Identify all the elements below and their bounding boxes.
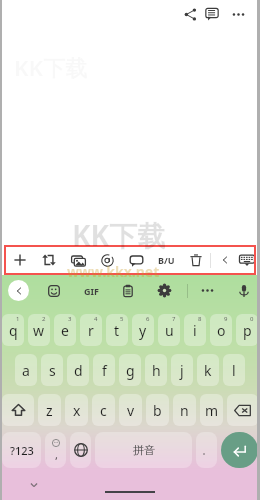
button[interactable]: t <box>106 314 128 346</box>
button[interactable]: j <box>171 354 193 386</box>
staticText: c <box>100 401 107 420</box>
button[interactable]: Insert image <box>67 249 89 271</box>
staticText: x <box>73 401 81 420</box>
button[interactable]: k <box>197 354 219 386</box>
staticText: 0 <box>250 315 254 323</box>
staticText: v <box>127 401 135 420</box>
button[interactable]: 。 <box>196 432 217 468</box>
staticText: www.kkx.net <box>67 262 160 281</box>
staticText: p <box>243 321 252 340</box>
button[interactable]: Settings <box>146 275 182 306</box>
staticText: KK下载 <box>72 216 166 254</box>
staticText: w <box>33 321 45 340</box>
button[interactable]: i <box>184 314 206 346</box>
button[interactable]: a <box>15 354 37 386</box>
button[interactable]: Comment <box>201 3 223 25</box>
button[interactable]: c <box>92 394 115 426</box>
button[interactable]: Previous <box>214 249 236 271</box>
staticText: e <box>61 321 69 340</box>
button[interactable]: z <box>38 394 61 426</box>
staticText: i <box>193 321 197 340</box>
staticText: o <box>217 321 226 340</box>
button[interactable]: n <box>173 394 196 426</box>
button[interactable]: x <box>65 394 88 426</box>
button[interactable]: u <box>158 314 180 346</box>
button[interactable]: Shift <box>2 394 34 426</box>
button[interactable]: More options <box>227 3 249 25</box>
button[interactable]: o <box>210 314 232 346</box>
staticText: , <box>55 447 58 462</box>
staticText: 6 <box>146 315 150 323</box>
staticText: 3 <box>68 315 72 323</box>
button[interactable]: Voice input <box>227 275 260 306</box>
button[interactable]: b <box>146 394 169 426</box>
button[interactable]: e <box>54 314 76 346</box>
button[interactable]: g <box>119 354 141 386</box>
button[interactable]: v <box>119 394 142 426</box>
button[interactable]: y <box>132 314 154 346</box>
staticText: h <box>152 361 161 380</box>
button[interactable]: s <box>41 354 63 386</box>
button[interactable]: d <box>67 354 89 386</box>
staticText: 4 <box>94 315 98 323</box>
staticText: 7 <box>172 315 176 323</box>
button[interactable]: ?123 <box>2 432 41 468</box>
staticText: n <box>180 401 189 420</box>
button[interactable]: More <box>188 275 227 306</box>
button[interactable]: Text format <box>155 249 177 271</box>
staticText: y <box>139 321 147 340</box>
staticText: t <box>114 321 120 340</box>
staticText: j <box>180 361 184 380</box>
staticText: B/U <box>158 254 175 266</box>
button[interactable]: p <box>236 314 258 346</box>
staticText: z <box>46 401 53 420</box>
staticText: 9 <box>224 315 228 323</box>
button[interactable]: Repost <box>38 249 60 271</box>
staticText: a <box>22 361 30 380</box>
staticText: GIF <box>84 285 99 297</box>
button[interactable]: , <box>45 432 66 468</box>
staticText: l <box>232 361 236 380</box>
button[interactable]: Stickers <box>36 275 72 306</box>
staticText: 2 <box>42 315 46 323</box>
button[interactable]: Enter <box>221 432 258 468</box>
staticText: g <box>126 361 135 380</box>
button[interactable]: h <box>145 354 167 386</box>
staticText: 8 <box>198 315 202 323</box>
button[interactable]: Hide keyboard <box>237 249 256 271</box>
staticText: ?123 <box>10 443 34 458</box>
staticText: k <box>204 361 212 380</box>
button[interactable]: f <box>93 354 115 386</box>
button[interactable]: l <box>223 354 245 386</box>
button[interactable]: Comment <box>125 249 147 271</box>
button[interactable] <box>70 432 91 468</box>
staticText: f <box>102 361 107 380</box>
button[interactable]: Delete <box>185 249 207 271</box>
staticText: r <box>88 321 94 340</box>
button[interactable]: GIF <box>72 275 110 306</box>
button[interactable]: m <box>200 394 223 426</box>
button[interactable]: q <box>2 314 24 346</box>
staticText: u <box>165 321 174 340</box>
button[interactable]: Mention <box>96 249 118 271</box>
button[interactable]: Backspace <box>227 394 258 426</box>
staticText: 。 <box>202 445 211 456</box>
staticText: s <box>49 361 56 380</box>
button[interactable]: Share <box>179 3 201 25</box>
button[interactable]: Back <box>8 280 29 301</box>
staticText: d <box>74 361 83 380</box>
staticText: 5 <box>120 315 124 323</box>
staticText: 1 <box>16 315 20 323</box>
button[interactable]: w <box>28 314 50 346</box>
staticText: b <box>153 401 162 420</box>
button[interactable]: Hide keyboard <box>27 478 40 491</box>
button[interactable]: r <box>80 314 102 346</box>
button[interactable]: Add <box>9 249 31 271</box>
button[interactable]: 拼音 <box>95 432 192 468</box>
staticText: q <box>9 321 18 340</box>
staticText: 拼音 <box>133 443 155 457</box>
staticText: m <box>205 401 219 420</box>
button[interactable]: Clipboard <box>110 275 146 306</box>
